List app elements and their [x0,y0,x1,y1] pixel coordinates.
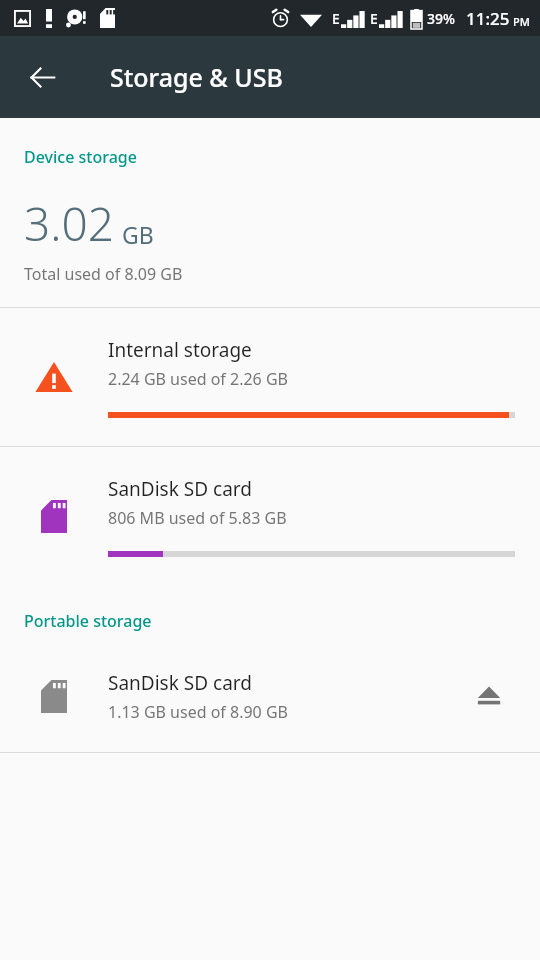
button[interactable]: Device storage [0,118,540,307]
button[interactable]: SanDisk SD card [0,447,540,585]
staticText: 1.13 GB used of 8.90 GB [108,701,288,723]
staticText: 39% [427,9,455,28]
staticText: 2.24 GB used of 2.26 GB [108,368,288,390]
button[interactable]: SanDisk SD card [0,640,540,752]
staticText: Internal storage [108,337,252,363]
button[interactable]: Eject [463,670,515,722]
staticText: SanDisk SD card [108,670,252,696]
staticText: Device storage [24,146,137,168]
staticText: Storage & USB [110,60,283,94]
staticText: Total used of 8.09 GB [24,263,183,285]
staticText: 806 MB used of 5.83 GB [108,507,287,529]
staticText: E [370,9,378,28]
button[interactable]: Internal storage [0,308,540,446]
button[interactable]: Back [16,51,68,103]
staticText: 11:25 [466,7,510,30]
staticText: PM [513,14,530,29]
staticText: Portable storage [24,610,152,632]
staticText: 3.02 [24,192,115,255]
staticText: SanDisk SD card [108,476,252,502]
staticText: GB [122,219,154,250]
staticText: E [332,9,340,28]
